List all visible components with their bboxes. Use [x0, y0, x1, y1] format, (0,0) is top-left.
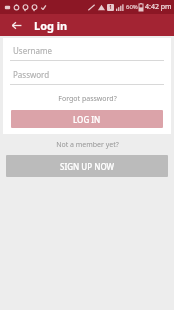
- staticText: 60%: [126, 3, 138, 11]
- button[interactable]: SIGN UP NOW: [6, 155, 168, 177]
- button[interactable]: Back: [8, 17, 24, 33]
- staticText: 4:42 pm: [145, 2, 172, 12]
- button[interactable]: Forgot password?: [3, 94, 171, 104]
- staticText: SIGN UP NOW: [60, 161, 115, 172]
- button[interactable]: Not a member yet?: [0, 140, 174, 150]
- staticText: Log in: [34, 18, 68, 33]
- button[interactable]: Password: [10, 69, 164, 85]
- staticText: Not a member yet?: [56, 140, 119, 150]
- staticText: Username: [13, 45, 52, 56]
- staticText: 1: [109, 4, 112, 11]
- staticText: Forgot password?: [58, 94, 117, 104]
- staticText: LOG IN: [73, 114, 101, 125]
- staticText: Password: [13, 69, 50, 80]
- button[interactable]: Username: [10, 45, 164, 61]
- button[interactable]: LOG IN: [11, 110, 163, 128]
